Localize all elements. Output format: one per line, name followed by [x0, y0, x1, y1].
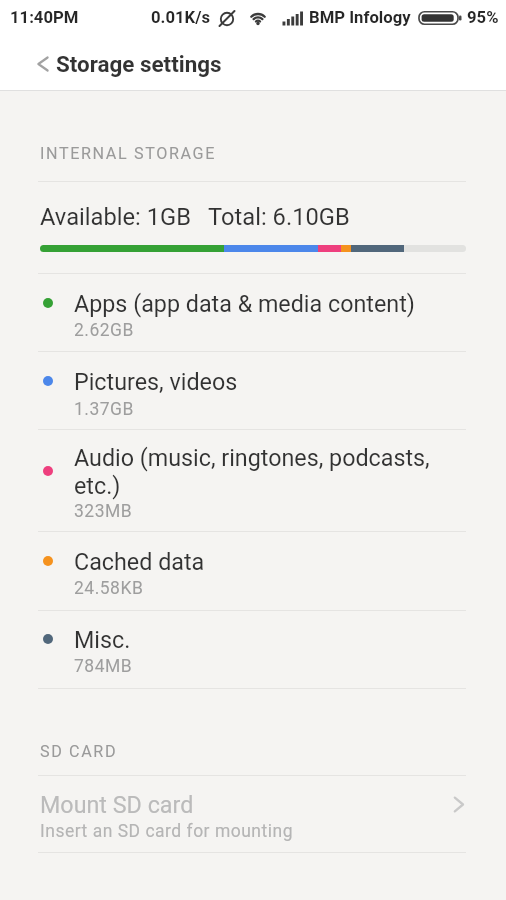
staticText: Pictures, videos — [74, 368, 238, 395]
button[interactable] — [0, 352, 506, 429]
button[interactable] — [0, 532, 506, 610]
staticText: 24.58KB — [74, 578, 144, 599]
staticText: 11:40PM — [10, 8, 79, 28]
button[interactable] — [0, 274, 506, 351]
staticText: INTERNAL STORAGE — [40, 144, 216, 163]
staticText: Mount SD card — [40, 791, 194, 818]
staticText: 323MB — [74, 501, 133, 522]
staticText: Cached data — [74, 548, 205, 575]
staticText: Apps (app data & media content) — [74, 290, 415, 317]
staticText: SD CARD — [40, 742, 118, 761]
staticText: 2.62GB — [74, 320, 134, 341]
staticText: Available: 1GB Total: 6.10GB — [40, 203, 350, 231]
staticText: Audio (music, ringtones, podcasts, — [74, 444, 430, 471]
staticText: etc.) — [74, 472, 121, 499]
staticText: 784MB — [74, 656, 133, 677]
button[interactable] — [0, 611, 506, 688]
button[interactable] — [28, 49, 58, 79]
staticText: Misc. — [74, 626, 131, 653]
button[interactable] — [0, 776, 506, 852]
staticText: BMP Infology — [309, 8, 411, 28]
button[interactable] — [0, 430, 506, 531]
staticText: Insert an SD card for mounting — [40, 821, 294, 842]
staticText: 0.01K/s — [151, 8, 211, 28]
staticText: Storage settings — [56, 51, 222, 77]
staticText: 1.37GB — [74, 399, 134, 420]
staticText: 95% — [467, 8, 499, 28]
